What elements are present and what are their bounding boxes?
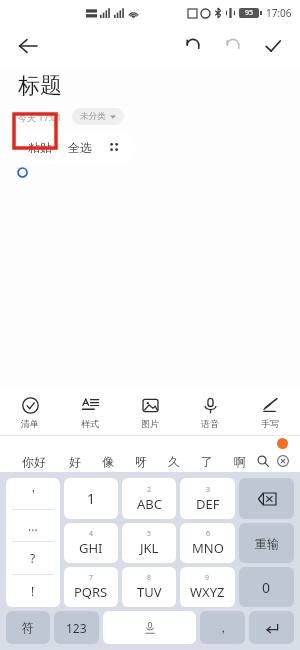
staticText: 4 [89,529,94,539]
staticText: 清单 [21,418,39,429]
staticText: 呀 [135,454,147,469]
staticText: 9 [205,573,210,583]
button[interactable]: ， [200,611,245,644]
staticText: 标题 [18,72,62,100]
staticText: 手写 [261,418,279,429]
staticText: 符 [22,620,34,635]
button[interactable]: Undo [178,31,208,61]
button[interactable]: 3 [180,478,235,519]
button[interactable]: Close suggestions [276,450,290,472]
button[interactable]: 123 [54,611,99,644]
staticText: 8 [147,573,152,583]
button[interactable]: Space [103,611,196,644]
button[interactable]: 样式 [60,389,120,435]
button[interactable]: 手写 [240,389,300,435]
staticText: 2 [147,485,152,495]
staticText: 你好 [22,454,46,469]
staticText: TUV [137,583,162,601]
staticText: ABC [137,495,162,513]
staticText: 1 [87,489,96,508]
button[interactable]: 1 [64,478,118,519]
staticText: ， [217,620,229,635]
button[interactable]: Back [12,30,44,62]
button[interactable]: 4 [64,523,118,563]
staticText: JKL [140,539,159,557]
button[interactable]: 7 [64,567,118,607]
staticText: 5 [147,529,152,539]
staticText: 了 [201,454,213,469]
staticText: 啊 [234,454,246,469]
button[interactable]: 语音 [180,389,240,435]
staticText: DEF [196,495,220,513]
staticText: 95 [245,8,254,18]
staticText: 6 [206,529,211,539]
button[interactable]: 啊 [223,450,256,472]
button[interactable]: 呀 [124,450,157,472]
staticText: 语音 [201,418,219,429]
button[interactable]: 粘贴 [28,140,52,155]
button[interactable]: ... [6,510,60,541]
staticText: 久 [168,454,180,469]
button[interactable]: 8 [122,567,176,607]
staticText: 样式 [81,418,99,429]
button[interactable]: 2 [122,478,176,519]
button[interactable]: Enter [249,611,294,644]
staticText: 像 [102,454,114,469]
staticText: 今天 17:01 [18,111,62,123]
staticText: 全选 [68,140,92,155]
button[interactable]: 6 [180,523,235,563]
button[interactable]: 9 [180,567,235,607]
button[interactable]: ? [6,542,60,574]
button[interactable]: 重输 [239,523,294,563]
staticText: ! [31,583,35,599]
staticText: 3 [206,485,211,495]
staticText: 好 [69,454,81,469]
button[interactable]: 好 [58,450,91,472]
button[interactable]: 图片 [120,389,180,435]
button[interactable]: Search [256,450,270,472]
staticText: 7 [89,573,94,583]
button[interactable]: Backspace [239,478,294,519]
staticText: 17:06 [266,6,292,20]
staticText: 未分类 [80,111,106,122]
button[interactable]: 符 [6,611,50,644]
staticText: GHI [79,539,103,557]
button[interactable]: Done [258,31,288,61]
button[interactable]: 5 [122,523,176,563]
staticText: ? [30,550,36,566]
staticText: 重输 [255,536,279,551]
staticText: WXYZ [190,583,225,601]
button[interactable]: 全选 [68,140,92,155]
staticText: 图片 [141,418,159,429]
staticText: 0 [262,578,271,597]
button[interactable]: More options [106,139,122,155]
button[interactable]: 久 [157,450,190,472]
button[interactable]: Redo [218,31,248,61]
button[interactable]: 未分类 [72,108,124,125]
button[interactable]: 清单 [0,389,60,435]
button[interactable]: ! [6,575,60,607]
button[interactable]: 了 [190,450,223,472]
staticText: 123 [66,620,87,636]
staticText: ' [32,486,35,502]
staticText: PQRS [74,583,108,601]
staticText: MNO [192,539,224,557]
button[interactable]: ' [6,478,60,509]
button[interactable]: 像 [91,450,124,472]
staticText: ... [28,518,38,534]
button[interactable]: Input method logo [277,438,288,449]
button[interactable]: 你好 [10,450,58,472]
button[interactable]: 0 [239,567,294,607]
staticText: 粘贴 [28,140,52,155]
